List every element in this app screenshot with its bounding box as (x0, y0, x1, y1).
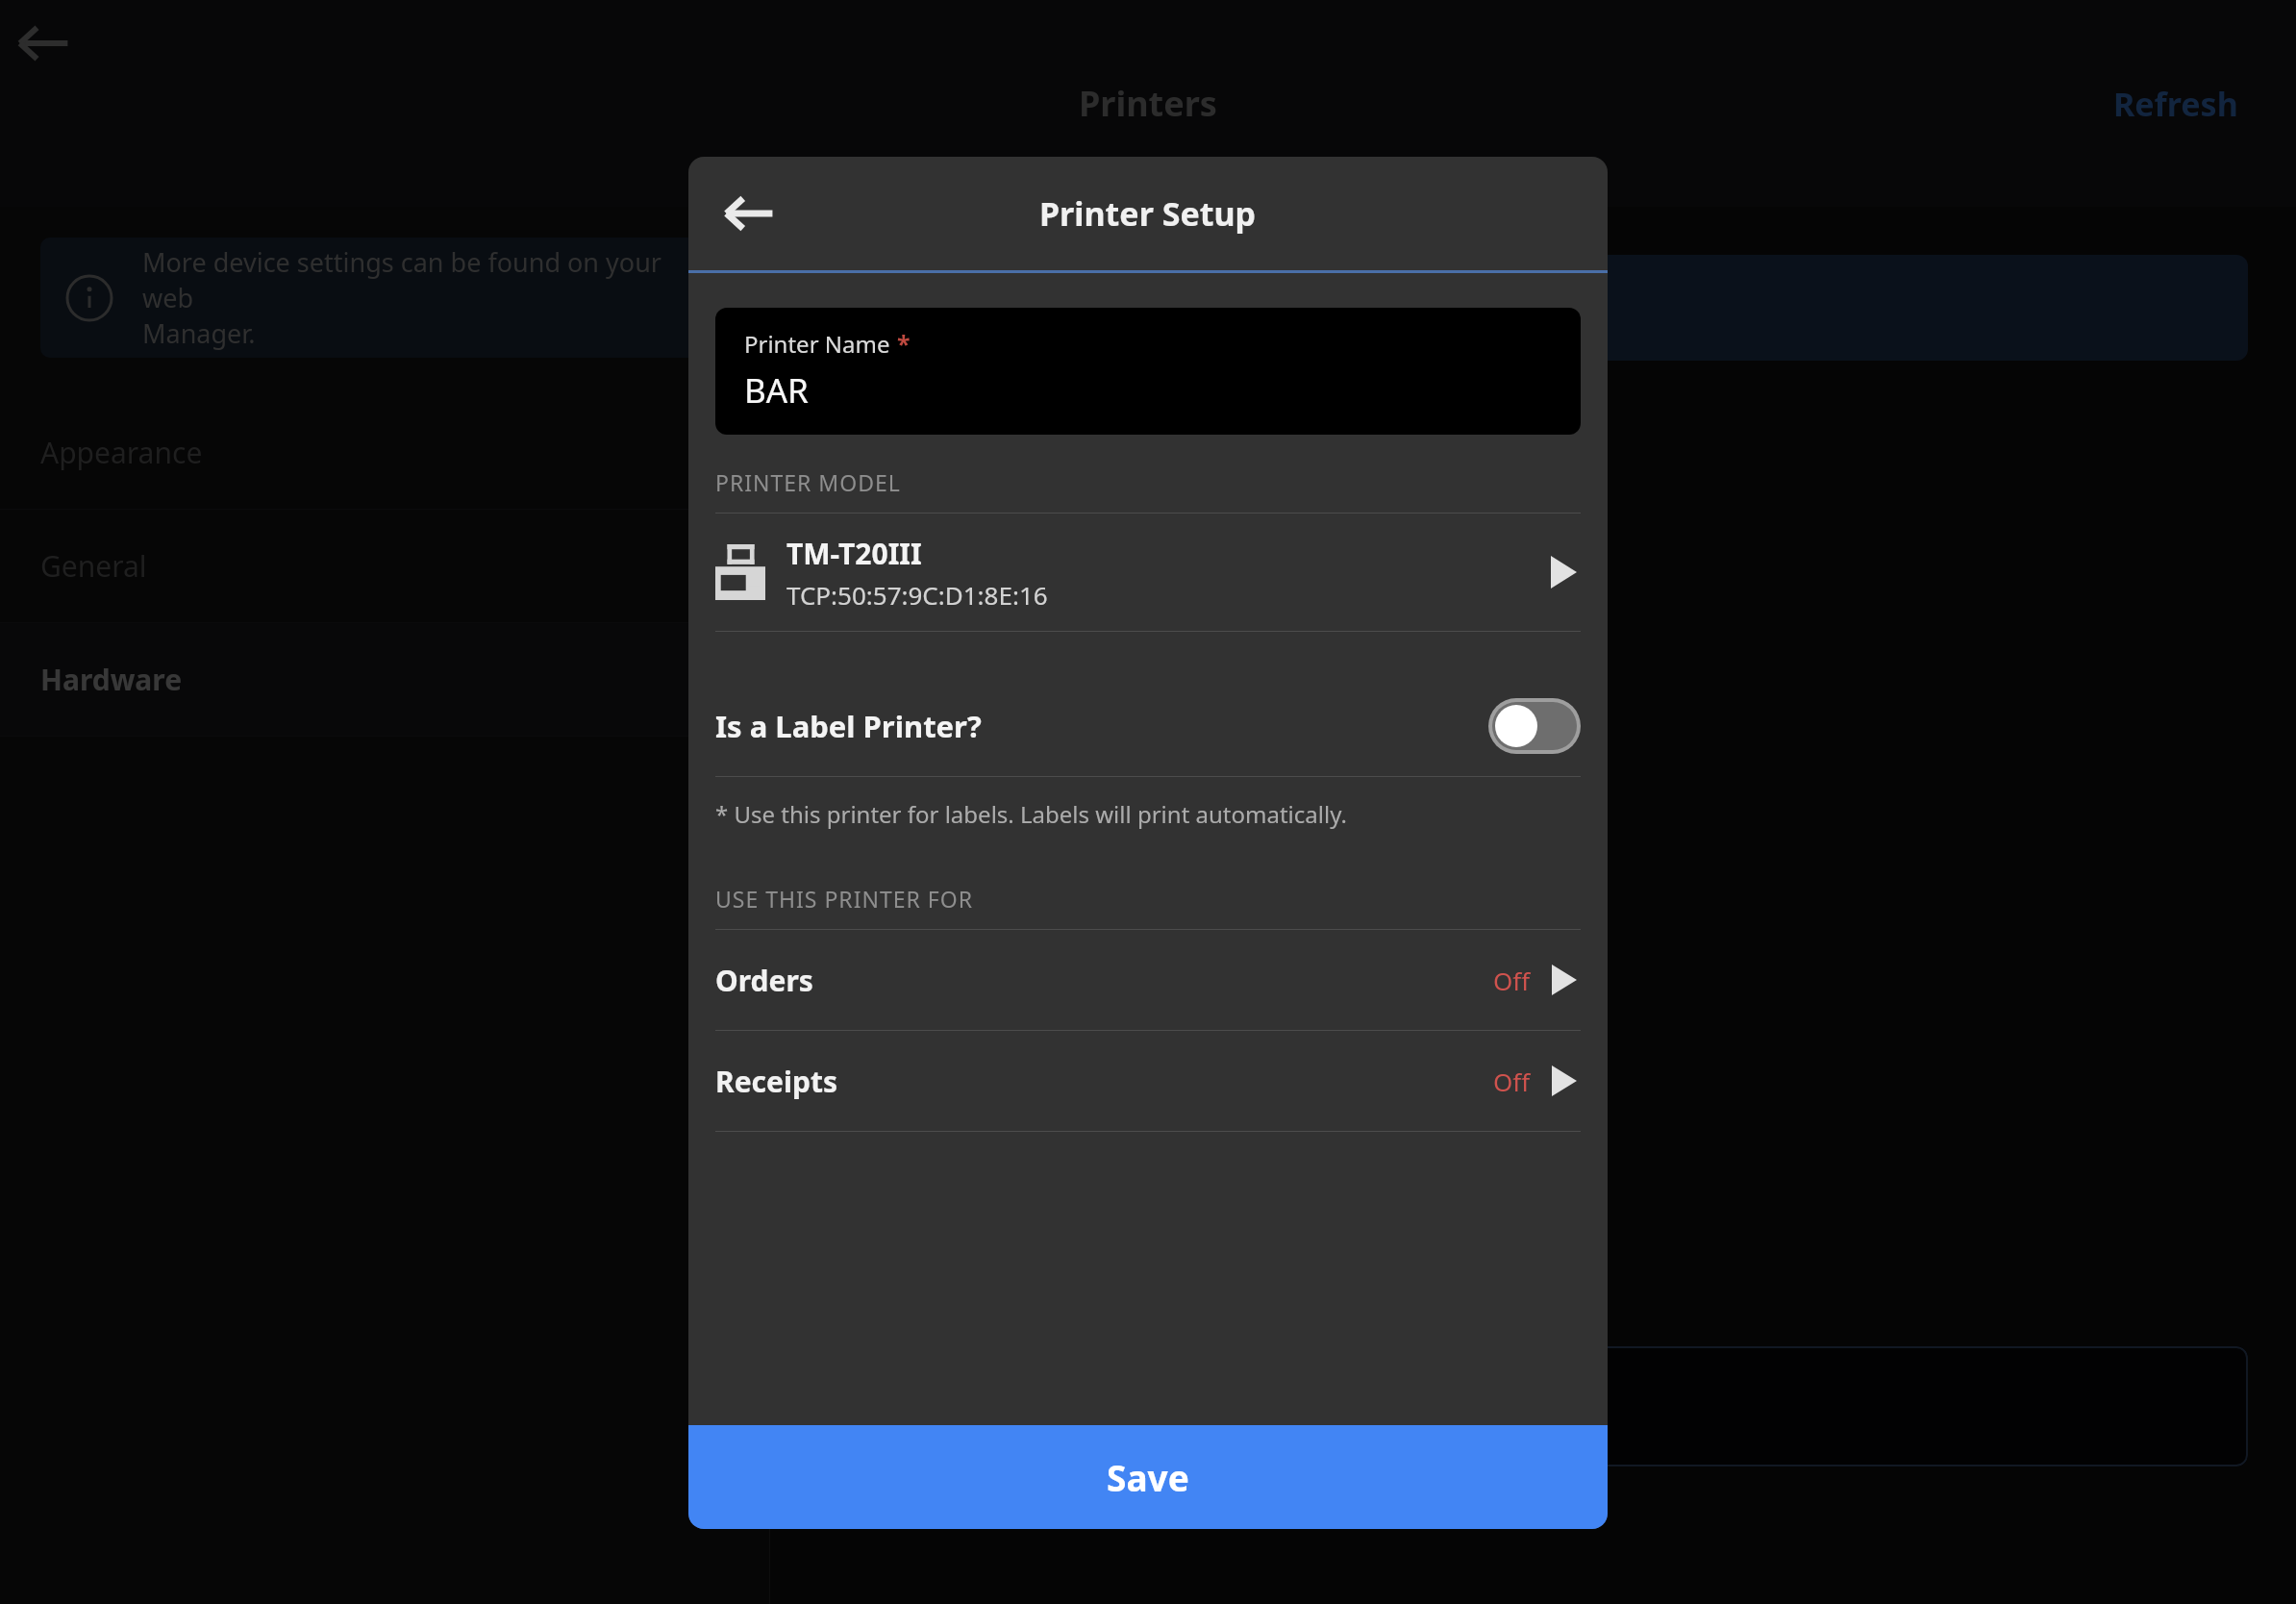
staticText: PRINTER MODEL (715, 467, 901, 497)
staticText: More device settings can be found on you… (142, 244, 702, 351)
button[interactable]: Hardware (0, 623, 769, 736)
staticText: General (40, 546, 147, 586)
button[interactable]: General (0, 510, 769, 622)
staticText: Printers (1079, 80, 1217, 127)
button[interactable]: Refresh (2113, 82, 2238, 126)
button[interactable]: TM-T20III (715, 514, 1581, 631)
staticText: Is a Label Printer? (715, 706, 982, 746)
staticText: TCP:50:57:9C:D1:8E:16 (786, 578, 1048, 612)
staticText: Add Printer (857, 286, 1044, 330)
staticText: Copy From Another Device (857, 1385, 1288, 1429)
button[interactable]: Back (0, 0, 87, 87)
button[interactable]: Add Printer (818, 255, 2248, 361)
button[interactable]: Is a Label Printer? (715, 676, 1581, 776)
staticText: Orders (715, 961, 813, 1000)
staticText: BAR (744, 367, 809, 414)
staticText: * (897, 327, 911, 360)
staticText: Receipts (715, 1062, 837, 1101)
staticText: * Use this printer for labels. Labels wi… (715, 798, 1347, 830)
button[interactable]: Orders (715, 930, 1581, 1030)
button[interactable]: Back (708, 172, 790, 255)
button[interactable]: Is a Label Printer toggle (1488, 698, 1581, 754)
staticText: Off (1493, 1065, 1531, 1098)
staticText: This will override your current setup. L… (818, 1491, 1584, 1527)
staticText: Printer Name (744, 328, 890, 360)
staticText: USE THIS PRINTER FOR (715, 884, 974, 914)
staticText: Hardware (40, 660, 183, 699)
staticText: Appearance (40, 433, 203, 472)
button[interactable]: Printer Name (715, 308, 1581, 435)
staticText: Save (1107, 1453, 1189, 1501)
button[interactable]: Copy From Another Device (818, 1346, 2248, 1466)
staticText: Off (1493, 964, 1531, 997)
button[interactable]: Save (688, 1425, 1608, 1529)
staticText: Printer Setup (1039, 191, 1257, 236)
button[interactable]: Receipts (715, 1031, 1581, 1131)
button[interactable]: Appearance (0, 396, 769, 509)
staticText: TM-T20III (786, 534, 922, 573)
